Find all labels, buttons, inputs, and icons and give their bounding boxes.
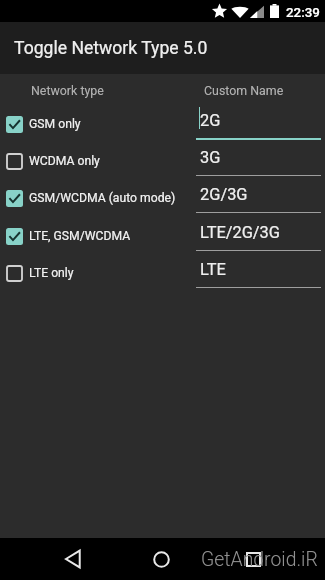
staticText: GSM/WCDMA (auto mode) [29,191,176,205]
button[interactable]: 2G [192,105,325,138]
staticText: LTE/2G/3G [200,223,280,242]
staticText: Toggle Network Type 5.0 [14,38,208,59]
staticText: Network type [31,83,104,98]
staticText: GSM only [29,117,81,131]
button[interactable]: LTE [192,254,325,287]
staticText: Custom Name [204,83,284,98]
staticText: 22:39 [286,5,320,21]
staticText: GetAndroid.iR [201,548,318,571]
button[interactable]: GSM only [0,108,190,140]
button[interactable]: LTE, GSM/WCDMA [0,220,190,252]
button[interactable]: 3G [192,142,325,175]
button[interactable]: Home [139,542,184,576]
button[interactable]: Recent apps [231,542,276,576]
staticText: WCDMA only [29,154,100,168]
staticText: 2G [200,111,221,130]
staticText: LTE, GSM/WCDMA [29,229,131,243]
button[interactable]: LTE only [0,257,190,289]
button[interactable]: Back [50,542,95,576]
button[interactable]: 2G/3G [192,179,325,212]
staticText: LTE only [29,266,74,280]
button[interactable]: WCDMA only [0,145,190,177]
button[interactable]: GSM/WCDMA (auto mode) [0,182,190,214]
button[interactable]: LTE/2G/3G [192,217,325,250]
staticText: 2G/3G [200,185,248,204]
staticText: 3G [200,148,221,167]
staticText: LTE [200,260,226,279]
